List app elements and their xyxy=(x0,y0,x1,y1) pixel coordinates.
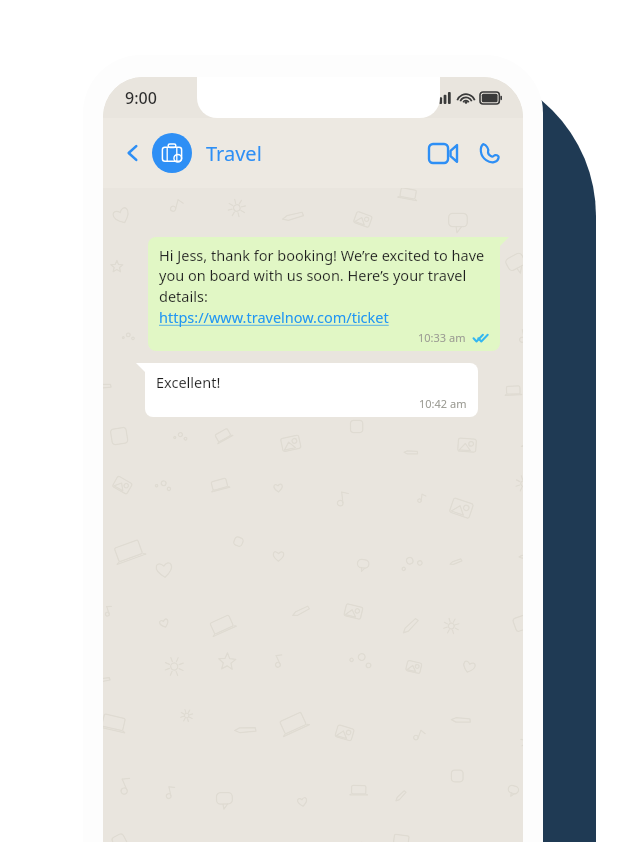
staticText: 10:42 am xyxy=(419,396,467,411)
staticText: Hi Jess, thank for booking! We’re excite… xyxy=(159,245,489,328)
staticText: 10:33 am xyxy=(418,330,466,345)
button[interactable]: Voice call xyxy=(469,133,509,173)
button[interactable]: Contact avatar xyxy=(152,133,192,173)
button[interactable]: Excellent! xyxy=(145,363,478,417)
staticText: 9:00 xyxy=(125,87,157,109)
button[interactable]: Video call xyxy=(423,133,463,173)
button[interactable]: Hi Jess, thank for booking! We’re excite… xyxy=(148,237,500,351)
staticText: Excellent! xyxy=(156,372,221,392)
staticText: Travel xyxy=(206,140,262,167)
button[interactable]: Travel xyxy=(206,140,262,167)
button[interactable]: Back xyxy=(117,137,149,169)
